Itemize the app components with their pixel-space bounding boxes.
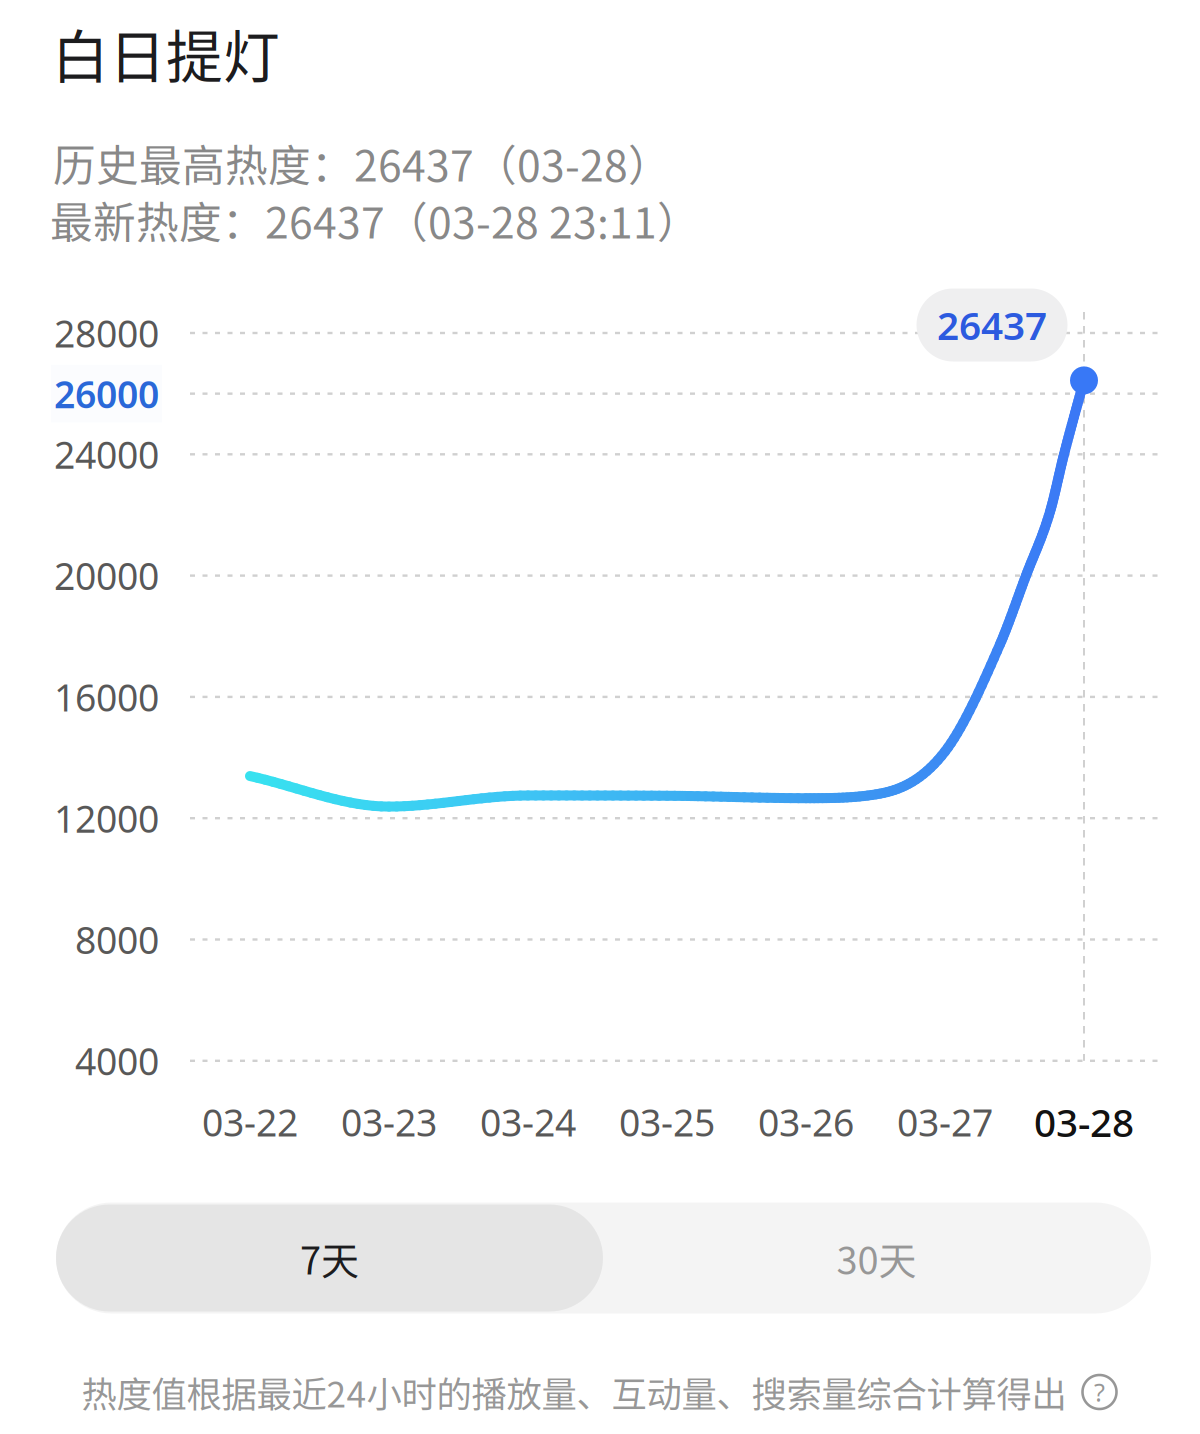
staticText: 16000 bbox=[54, 672, 159, 722]
staticText: 24000 bbox=[54, 429, 159, 479]
button[interactable]: 7天 bbox=[56, 1204, 603, 1311]
button[interactable]: 说明 bbox=[1080, 1373, 1118, 1411]
staticText: 26437 bbox=[937, 299, 1047, 351]
button[interactable]: 30天 bbox=[603, 1204, 1150, 1311]
staticText: 03-24 bbox=[480, 1097, 576, 1147]
staticText: 26000 bbox=[54, 369, 159, 418]
staticText: 热度值根据最近24小时的播放量、互动量、搜索量综合计算得出 bbox=[81, 1366, 1066, 1418]
staticText: 03-22 bbox=[202, 1097, 298, 1147]
staticText: 7天 bbox=[300, 1230, 359, 1285]
staticText: 4000 bbox=[75, 1036, 159, 1086]
staticText: 白日提灯 bbox=[52, 12, 280, 94]
staticText: 12000 bbox=[54, 793, 159, 843]
staticText: 最新热度：26437（03-28 23:11） bbox=[50, 189, 700, 251]
staticText: 03-28 bbox=[1034, 1096, 1134, 1148]
staticText: 03-23 bbox=[341, 1097, 437, 1147]
staticText: 20000 bbox=[54, 551, 159, 600]
staticText: 8000 bbox=[75, 915, 159, 964]
staticText: 28000 bbox=[54, 308, 159, 358]
staticText: 历史最高热度：26437（03-28） bbox=[53, 132, 671, 194]
staticText: 03-25 bbox=[619, 1097, 715, 1147]
staticText: 03-27 bbox=[897, 1097, 993, 1147]
staticText: 03-26 bbox=[758, 1097, 854, 1147]
staticText: 30天 bbox=[836, 1230, 916, 1285]
staticText: ? bbox=[1094, 1375, 1105, 1409]
